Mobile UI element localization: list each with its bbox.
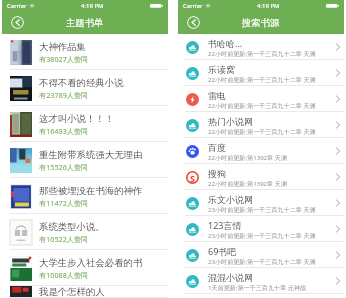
staticText: 大神作品集 — [39, 41, 86, 53]
staticText: 123言情 — [208, 219, 242, 231]
button[interactable]: 69书吧 — [178, 242, 344, 268]
staticText: 不得不看的经典小说 — [39, 77, 124, 89]
staticText: 22小时前更新:第一千三百九十二章 天渊 — [208, 49, 316, 57]
staticText: 百度 — [208, 142, 226, 153]
button[interactable]: 重生附带系统强大无理由 — [2, 142, 168, 178]
button[interactable]: 书哈哈... — [178, 34, 344, 60]
button[interactable]: 我是个怎样的人 — [2, 286, 168, 298]
staticText: Carrier — [183, 2, 203, 10]
staticText: 4:19 PM — [257, 2, 280, 10]
button[interactable]: Back — [11, 16, 24, 29]
staticText: 这才叫小说！！！ — [39, 113, 115, 125]
button[interactable]: Back — [187, 16, 200, 29]
staticText: 大学生步入社会必看的书 — [39, 257, 143, 269]
staticText: 我是个怎样的人 — [39, 286, 105, 298]
staticText: 1天前更新:第一千三百九十章 元神战 — [208, 283, 307, 291]
staticText: Carrier — [7, 2, 27, 10]
staticText: 23小时前更新:第一千三百九十二章 天渊 — [208, 257, 316, 265]
staticText: 有10522人赞同 — [39, 234, 89, 244]
staticText: 搜索书源 — [242, 17, 280, 29]
button[interactable]: 乐文小说网 — [178, 190, 344, 216]
button[interactable]: 百度 — [178, 138, 344, 164]
staticText: 系统类型小说。 — [39, 221, 105, 233]
staticText: 搜狗 — [208, 168, 226, 179]
button[interactable]: 不得不看的经典小说 — [2, 70, 168, 106]
staticText: 有23789人赞同 — [39, 90, 89, 100]
staticText: 热门小说网 — [208, 116, 253, 127]
button[interactable]: 乐读窝 — [178, 60, 344, 86]
button[interactable]: 大学生步入社会必看的书 — [2, 250, 168, 286]
staticText: 22小时前更新:第一千三百九十二章 天渊 — [208, 101, 316, 109]
staticText: 22小时前更新:第一千三百九十二章 天渊 — [208, 127, 316, 135]
staticText: 4:19 PM — [81, 2, 104, 10]
staticText: 乐文小说网 — [208, 194, 253, 205]
staticText: S — [190, 172, 195, 184]
staticText: 23小时前更新:第一千三百九十二章 天渊 — [208, 231, 316, 239]
button[interactable]: 混混小说网 — [178, 268, 344, 294]
staticText: 有15526人赞同 — [39, 162, 89, 172]
staticText: 混混小说网 — [208, 272, 253, 283]
staticText: 雷电 — [208, 90, 226, 101]
staticText: 23小时前更新:第一千三百九十二章 天渊 — [208, 205, 316, 213]
staticText: 有38027人赞同 — [39, 54, 89, 64]
button[interactable]: 热门小说网 — [178, 112, 344, 138]
staticText: 书哈哈... — [208, 37, 243, 49]
staticText: 重生附带系统强大无理由 — [39, 149, 143, 161]
staticText: 乐读窝 — [208, 64, 235, 75]
staticText: 有10088人赞同 — [39, 270, 89, 280]
staticText: 22小时前更新:第1392章 天渊 — [208, 179, 287, 187]
button[interactable]: 雷电 — [178, 86, 344, 112]
button[interactable]: 那些被埋没在书海的神作 — [2, 178, 168, 214]
staticText: 有16493人赞同 — [39, 126, 89, 136]
button[interactable]: S — [178, 164, 344, 190]
staticText: 有11472人赞同 — [39, 198, 89, 208]
staticText: 22小时前更新:第1392章 天渊 — [208, 153, 287, 161]
staticText: 主题书单 — [66, 17, 104, 29]
staticText: 22小时前更新:第一千三百九十二章 天渊 — [208, 75, 316, 83]
button[interactable]: 这才叫小说！！！ — [2, 106, 168, 142]
staticText: 那些被埋没在书海的神作 — [39, 185, 143, 197]
button[interactable]: 系统类型小说。 — [2, 214, 168, 250]
button[interactable]: 123言情 — [178, 216, 344, 242]
button[interactable]: 大神作品集 — [2, 34, 168, 70]
staticText: 69书吧 — [208, 245, 237, 257]
